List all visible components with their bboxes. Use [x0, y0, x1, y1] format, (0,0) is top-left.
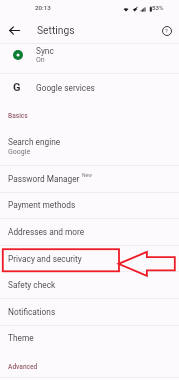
staticText: New	[82, 172, 92, 178]
button[interactable]: Help	[158, 22, 175, 39]
staticText: 53%	[152, 4, 164, 11]
button[interactable]	[0, 44, 179, 73]
button[interactable]: Notifications	[0, 299, 179, 325]
staticText: Notifications	[8, 307, 56, 317]
staticText: 20:13	[35, 4, 51, 11]
button[interactable]: Addresses and more	[0, 219, 179, 245]
staticText: On	[36, 56, 45, 64]
staticText: Password Manager	[8, 174, 80, 184]
staticText: Theme	[8, 333, 34, 343]
staticText: Search engine	[8, 137, 61, 147]
staticText: Advanced	[8, 363, 38, 371]
button[interactable]	[0, 74, 179, 103]
button[interactable]: Payment methods	[0, 192, 179, 218]
button[interactable]	[0, 130, 179, 165]
staticText: Addresses and more	[8, 227, 85, 237]
button[interactable]: Password Manager	[0, 166, 179, 192]
staticText: Basics	[8, 112, 28, 120]
button[interactable]: Safety check	[0, 272, 179, 298]
staticText: ?	[165, 27, 168, 34]
staticText: Safety check	[8, 280, 56, 290]
staticText: Google	[8, 148, 31, 156]
staticText: Settings	[37, 24, 75, 36]
staticText: Privacy and security	[8, 254, 82, 264]
button[interactable]: Theme	[0, 325, 179, 351]
button[interactable]: Privacy and security	[0, 246, 179, 272]
staticText: G	[13, 81, 21, 94]
staticText: Payment methods	[8, 200, 76, 210]
staticText: Google services	[36, 83, 95, 93]
button[interactable]: Back	[6, 22, 23, 39]
staticText: Sync	[36, 46, 54, 56]
